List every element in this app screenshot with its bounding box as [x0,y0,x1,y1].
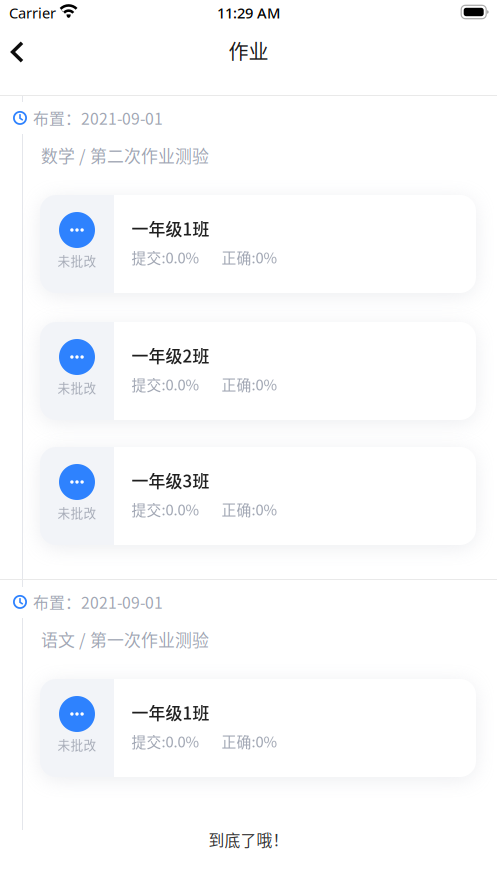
button[interactable]: 未批改 [40,447,476,545]
staticText: 一年级2班 [131,343,209,367]
staticText: 到底了哦！ [208,828,288,851]
staticText: 正确:0% [221,730,277,752]
button[interactable]: 未批改 [40,322,476,420]
staticText: 提交:0.0% [131,730,199,752]
staticText: 未批改 [57,378,96,396]
staticText: 提交:0.0% [131,246,199,268]
staticText: 一年级1班 [131,216,209,240]
staticText: 未批改 [57,735,96,753]
staticText: 语文 / 第一次作业测验 [41,627,209,651]
staticText: 一年级1班 [131,700,209,724]
staticText: 未批改 [57,503,96,521]
staticText: 一年级3班 [131,468,209,492]
staticText: 11:29 AM [217,3,280,22]
staticText: 数学 / 第二次作业测验 [41,143,209,167]
staticText: 布置：2021-09-01 [33,106,163,129]
button[interactable]: 未批改 [40,679,476,777]
staticText: 正确:0% [221,246,277,268]
staticText: 布置：2021-09-01 [33,590,163,613]
staticText: 作业 [228,36,268,65]
staticText: 正确:0% [221,498,277,520]
staticText: 正确:0% [221,373,277,395]
staticText: Carrier [9,3,56,22]
staticText: 提交:0.0% [131,498,199,520]
button[interactable]: Back [0,30,46,74]
staticText: 未批改 [57,251,96,269]
button[interactable]: 未批改 [40,195,476,293]
staticText: 提交:0.0% [131,373,199,395]
